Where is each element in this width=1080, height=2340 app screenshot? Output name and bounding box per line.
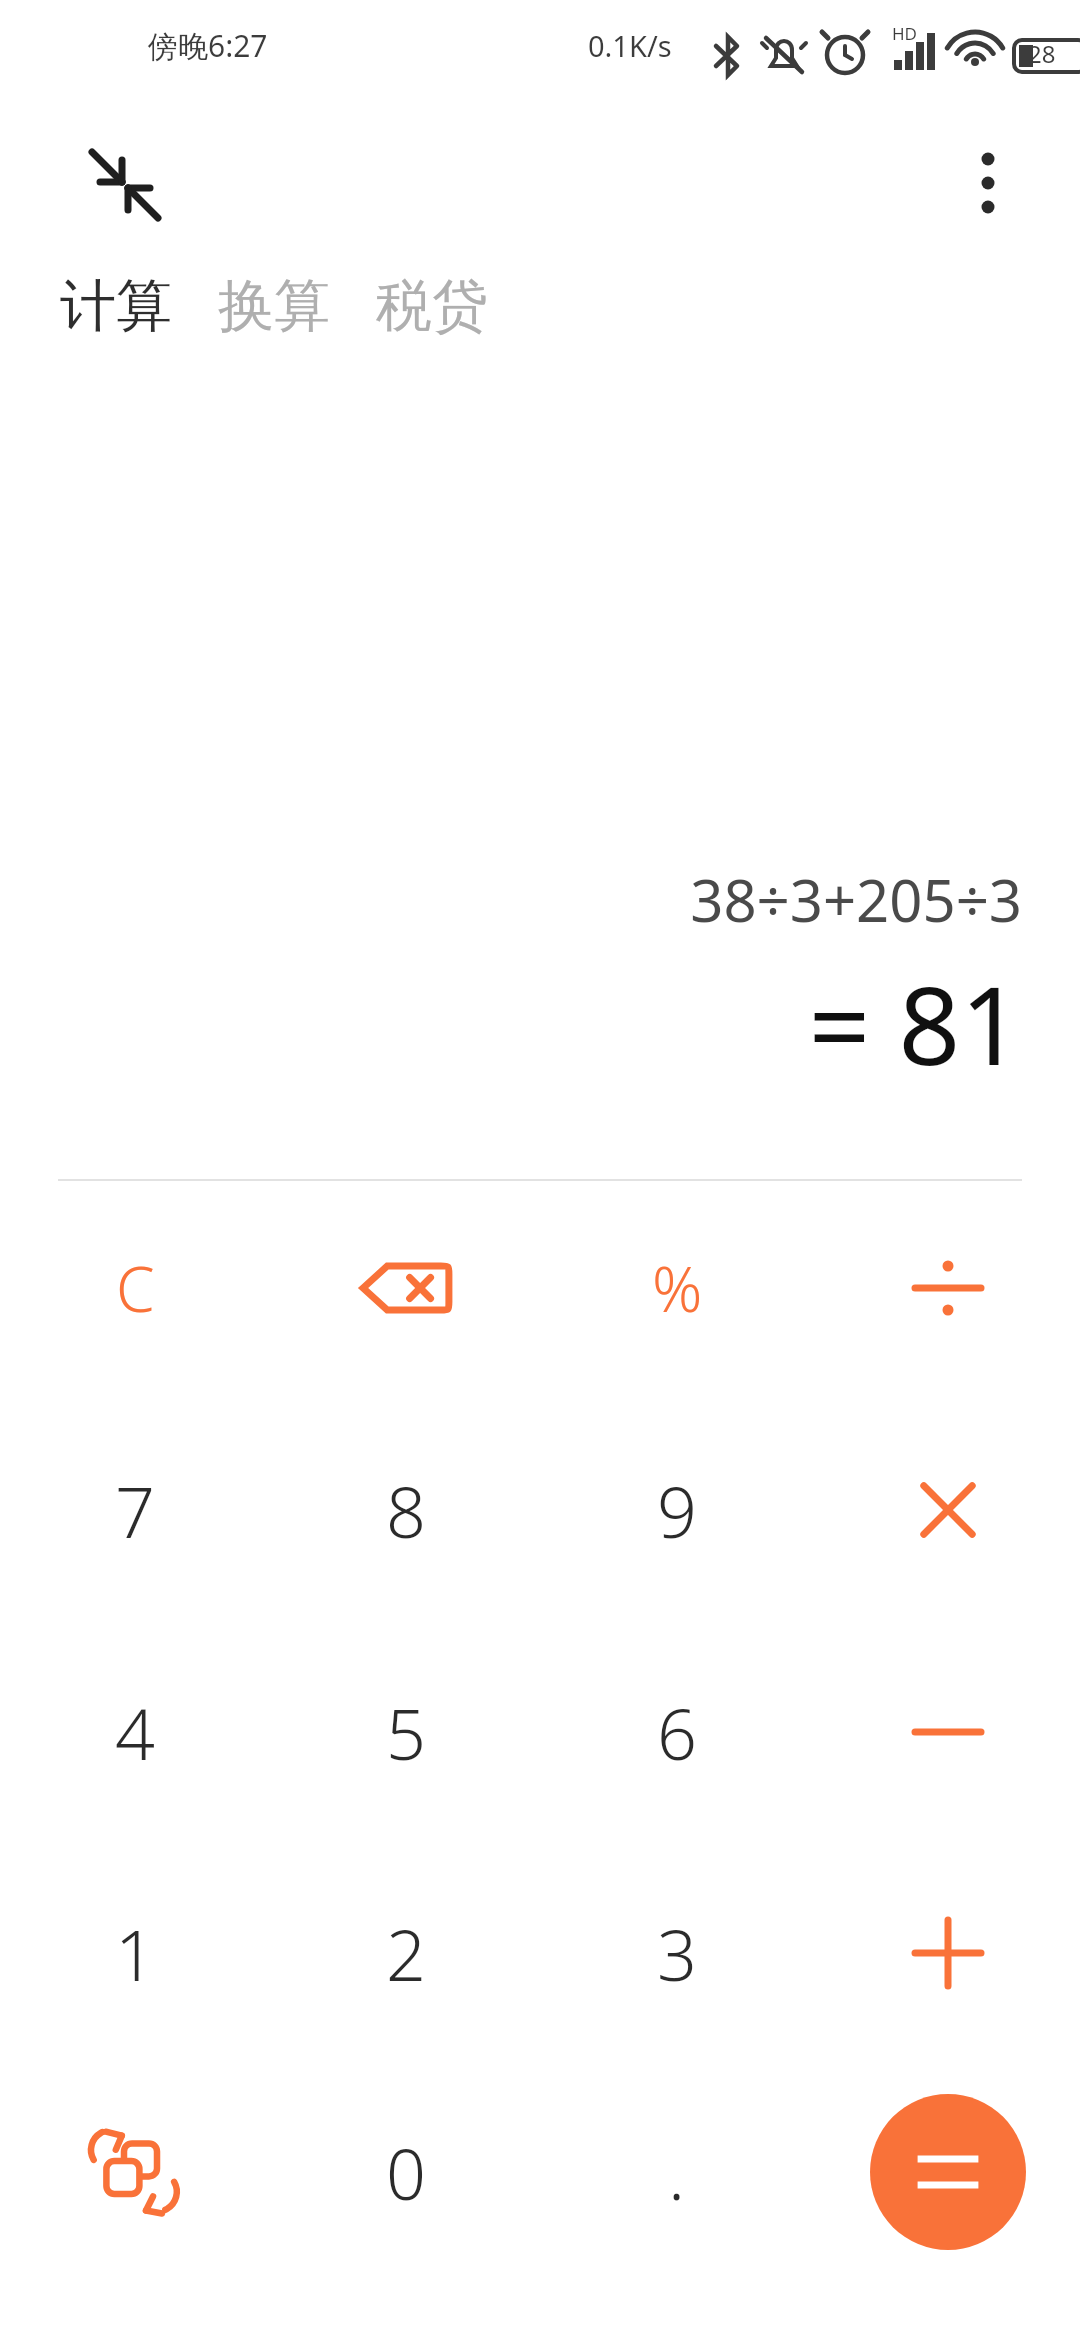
staticText: 1 [115, 1906, 155, 2001]
button[interactable]: % [561, 1188, 793, 1388]
button[interactable]: 2 [290, 1853, 522, 2053]
button[interactable]: C [19, 1188, 251, 1388]
staticText: 0.1K/s [588, 26, 672, 65]
button[interactable]: 计算 [58, 265, 174, 348]
staticText: 傍晚6:27 [148, 25, 268, 66]
staticText: 38÷3+205÷3 [690, 860, 1022, 939]
staticText: 6 [657, 1685, 697, 1780]
button[interactable]: Divide [832, 1188, 1064, 1388]
staticText: . [668, 2125, 686, 2220]
button[interactable]: 1 [19, 1853, 251, 2053]
button[interactable]: 5 [290, 1632, 522, 1832]
button[interactable]: 8 [290, 1410, 522, 1610]
staticText: 0 [386, 2125, 426, 2220]
staticText: 9 [657, 1463, 697, 1558]
button[interactable]: Equals [870, 2094, 1026, 2250]
staticText: 8 [386, 1463, 426, 1558]
button[interactable]: 换算 [216, 265, 332, 348]
button[interactable]: 9 [561, 1410, 793, 1610]
button[interactable]: Backspace [290, 1188, 522, 1388]
button[interactable]: Minus [832, 1632, 1064, 1832]
staticText: % [652, 1246, 703, 1330]
staticText: 7 [115, 1463, 155, 1558]
button[interactable]: More options [940, 135, 1036, 231]
button[interactable]: 3 [561, 1853, 793, 2053]
staticText: 税贷 [376, 271, 488, 342]
staticText: 3 [657, 1906, 697, 2001]
staticText: = 81 [808, 950, 1022, 1097]
staticText: 5 [386, 1685, 426, 1780]
button[interactable]: Collapse [70, 130, 180, 240]
staticText: HD [892, 22, 918, 45]
button[interactable]: . [561, 2072, 793, 2272]
staticText: 换算 [218, 271, 330, 342]
button[interactable]: 6 [561, 1632, 793, 1832]
button[interactable]: 7 [19, 1410, 251, 1610]
staticText: 4 [115, 1685, 155, 1780]
staticText: 28 [1028, 37, 1056, 70]
staticText: C [116, 1246, 155, 1330]
button[interactable]: Multiply [832, 1410, 1064, 1610]
staticText: 计算 [60, 271, 172, 342]
button[interactable]: Plus [832, 1853, 1064, 2053]
button[interactable]: 税贷 [374, 265, 490, 348]
button[interactable]: Unit convert [19, 2072, 251, 2272]
button[interactable]: 4 [19, 1632, 251, 1832]
staticText: 2 [386, 1906, 426, 2001]
button[interactable]: 0 [290, 2072, 522, 2272]
